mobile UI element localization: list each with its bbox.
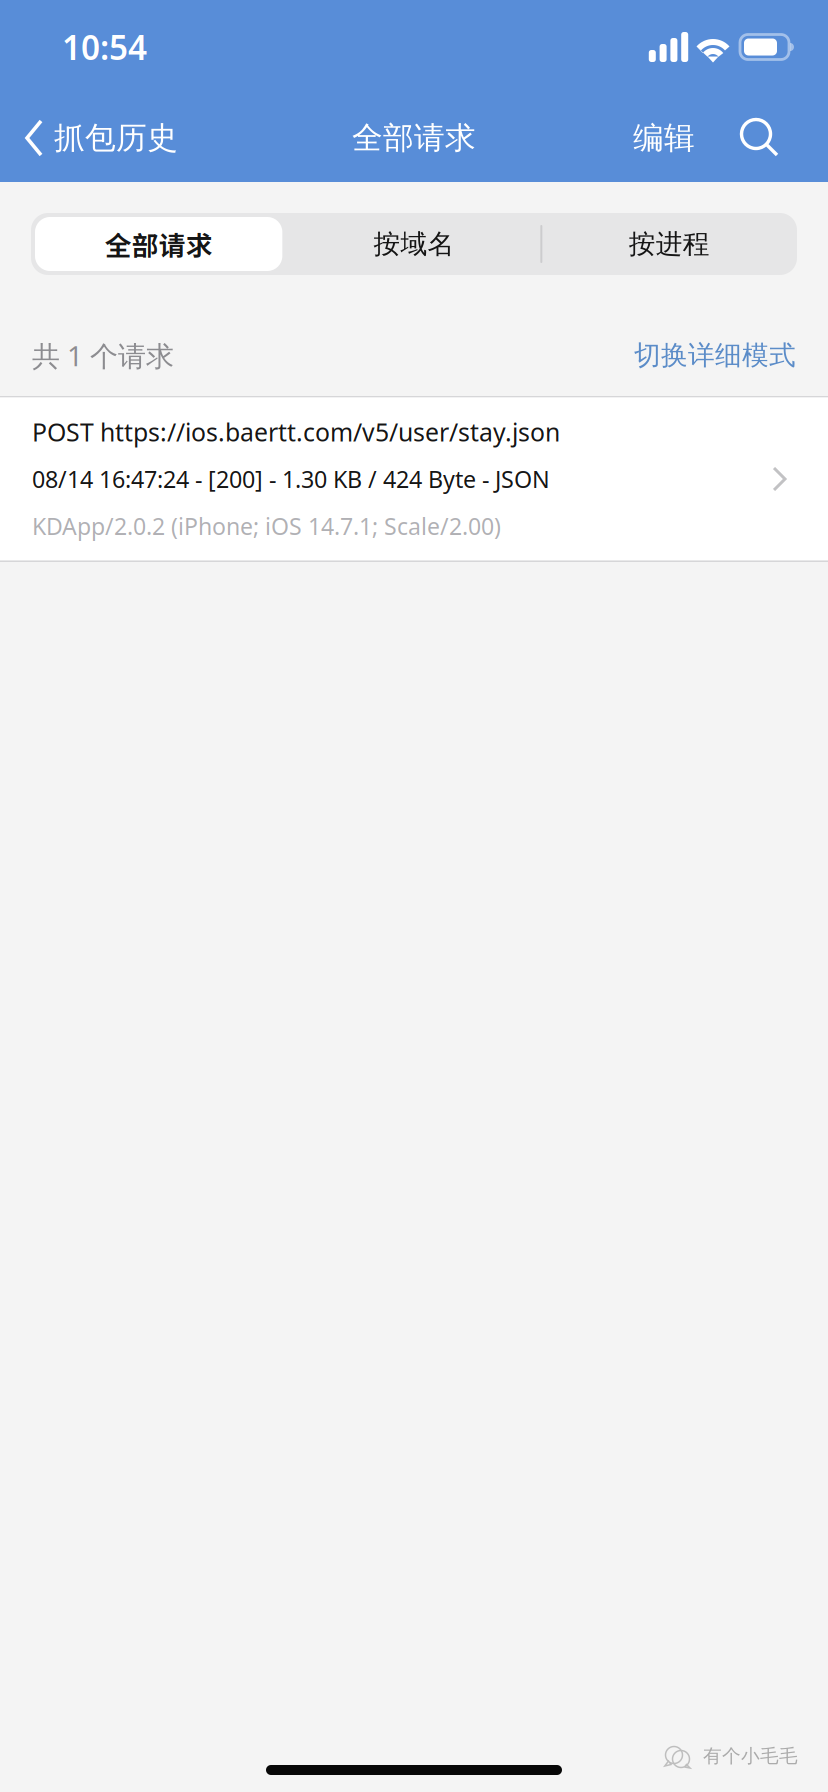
button[interactable]: 按域名 [286, 213, 542, 275]
button[interactable]: 全部请求 [31, 213, 286, 275]
staticText: 切换详细模式 [634, 339, 796, 372]
staticText: KDApp/2.0.2 (iPhone; iOS 14.7.1; Scale/2… [32, 510, 501, 542]
staticText: 按进程 [629, 228, 710, 260]
staticText: POST https://ios.baertt.com/v5/user/stay… [32, 415, 560, 449]
staticText: 共 1 个请求 [32, 337, 174, 374]
button[interactable]: Search [740, 94, 801, 182]
staticText: 08/14 16:47:24 - [200] - 1.30 KB / 424 B… [32, 463, 550, 495]
staticText: 编辑 [633, 119, 695, 157]
staticText: 按域名 [373, 228, 454, 260]
button[interactable]: 切换详细模式 [634, 339, 796, 372]
button[interactable]: 抓包历史 [0, 94, 194, 182]
button[interactable]: 编辑 [621, 94, 707, 182]
staticText: 全部请求 [105, 225, 213, 263]
staticText: 10:54 [62, 25, 147, 69]
button[interactable]: POST https://ios.baertt.com/v5/user/stay… [0, 397, 828, 560]
staticText: 有个小毛毛 [703, 1744, 798, 1767]
staticText: 抓包历史 [54, 119, 178, 157]
staticText: 全部请求 [352, 119, 476, 157]
button[interactable]: 按进程 [542, 213, 797, 275]
